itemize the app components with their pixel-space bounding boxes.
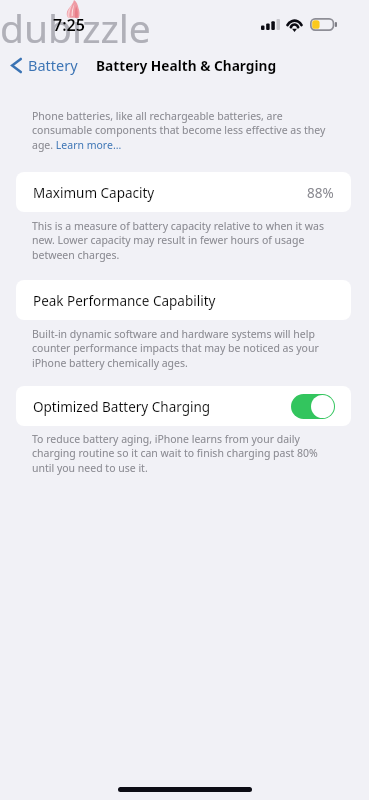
staticText: Optimized Battery Charging	[33, 398, 211, 416]
staticText: To reduce battery aging, iPhone learns f…	[32, 432, 332, 476]
staticText: Peak Performance Capability	[33, 292, 216, 310]
staticText: Battery	[28, 55, 78, 75]
staticText: Maximum Capacity	[33, 184, 155, 202]
staticText: 7:25	[53, 14, 85, 36]
other: Back	[10, 58, 22, 73]
button[interactable]: Maximum Capacity	[16, 172, 351, 212]
button[interactable]: Optimized Battery Charging	[16, 386, 351, 426]
staticText: Battery Health & Charging	[96, 56, 277, 75]
staticText: Phone batteries, like all rechargeable b…	[32, 109, 332, 153]
staticText: dubizzle	[0, 1, 151, 54]
button[interactable]: Peak Performance Capability	[16, 280, 351, 320]
staticText: This is a measure of battery capacity re…	[32, 219, 332, 263]
button[interactable]: Optimized Battery Charging toggle	[291, 394, 335, 419]
staticText: Built-in dynamic software and hardware s…	[32, 327, 332, 371]
staticText: 88%	[307, 184, 334, 202]
button[interactable]: Back	[10, 54, 78, 76]
